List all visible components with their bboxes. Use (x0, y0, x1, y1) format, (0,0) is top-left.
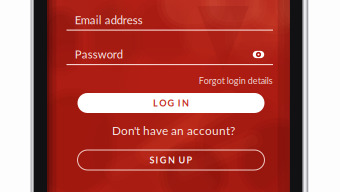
staticText: I (156, 155, 159, 165)
staticText: N (182, 98, 189, 108)
staticText: N (168, 155, 175, 165)
staticText: S (149, 155, 154, 165)
staticText: G (160, 155, 167, 165)
button[interactable]: S (77, 150, 264, 170)
staticText: Email address (75, 13, 143, 27)
staticText: Password (75, 47, 123, 61)
button[interactable]: L (77, 93, 264, 113)
staticText: L (153, 98, 158, 108)
staticText: I (178, 98, 181, 108)
staticText: U (178, 155, 185, 165)
staticText: P (187, 155, 193, 165)
button[interactable]: Forgot login details (199, 75, 273, 86)
staticText: G (167, 98, 174, 108)
button[interactable]: Show password (249, 46, 267, 62)
staticText: Don't have an account? (112, 123, 235, 138)
staticText: Forgot login details (199, 75, 273, 86)
staticText: O (159, 98, 166, 108)
